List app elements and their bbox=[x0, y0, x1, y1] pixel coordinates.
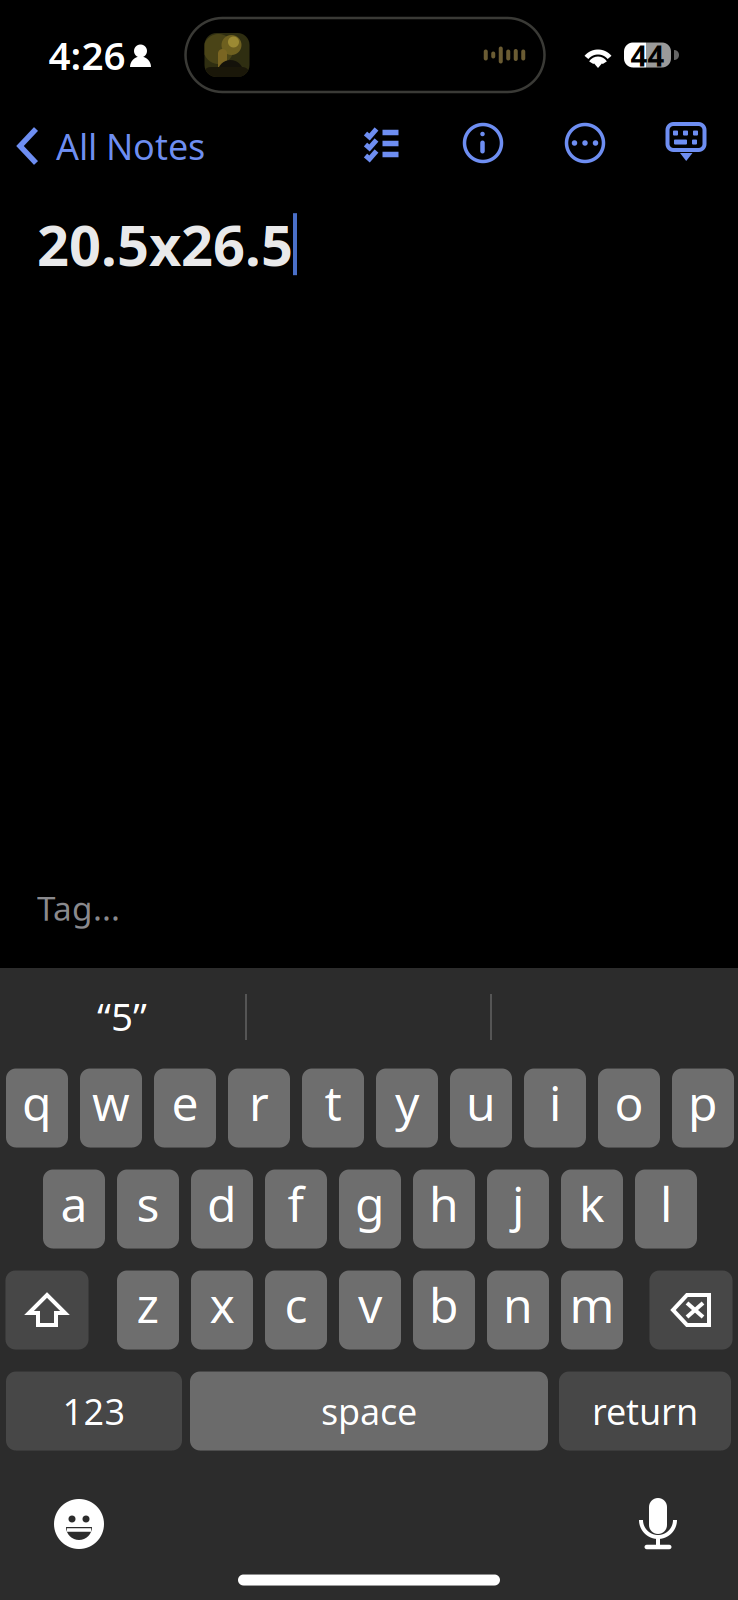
button[interactable]: Note Info bbox=[449, 109, 517, 177]
staticText: q bbox=[22, 1071, 52, 1134]
button[interactable]: All Notes bbox=[0, 105, 205, 187]
button[interactable]: h bbox=[413, 1169, 475, 1248]
button[interactable]: z bbox=[117, 1270, 179, 1349]
staticText: u bbox=[466, 1071, 496, 1134]
button[interactable]: Shift bbox=[5, 1270, 88, 1349]
button[interactable]: Delete bbox=[649, 1270, 732, 1349]
staticText: g bbox=[355, 1172, 385, 1235]
button[interactable]: g bbox=[339, 1169, 401, 1248]
button[interactable]: v bbox=[339, 1270, 401, 1349]
button[interactable]: f bbox=[265, 1169, 327, 1248]
button[interactable]: c bbox=[265, 1270, 327, 1349]
staticText: “5” bbox=[97, 990, 147, 1042]
staticText: s bbox=[136, 1172, 159, 1235]
staticText: e bbox=[171, 1071, 198, 1134]
staticText: p bbox=[688, 1071, 718, 1134]
staticText: n bbox=[503, 1273, 533, 1336]
button[interactable]: n bbox=[487, 1270, 549, 1349]
staticText: c bbox=[284, 1273, 307, 1336]
staticText: a bbox=[60, 1172, 87, 1235]
button[interactable]: a bbox=[43, 1169, 105, 1248]
button[interactable]: q bbox=[6, 1068, 68, 1147]
staticText: d bbox=[207, 1172, 237, 1235]
staticText: 123 bbox=[62, 1387, 125, 1435]
button[interactable]: d bbox=[191, 1169, 253, 1248]
button[interactable]: w bbox=[80, 1068, 142, 1147]
button[interactable]: space bbox=[190, 1371, 548, 1450]
button[interactable]: Tag... bbox=[37, 872, 240, 944]
button[interactable]: i bbox=[524, 1068, 586, 1147]
staticText: j bbox=[512, 1172, 524, 1235]
button[interactable]: b bbox=[413, 1270, 475, 1349]
staticText: i bbox=[549, 1071, 561, 1134]
staticText: r bbox=[249, 1071, 269, 1134]
button[interactable]: More bbox=[551, 109, 619, 177]
button[interactable]: r bbox=[228, 1068, 290, 1147]
button[interactable]: 123 bbox=[6, 1371, 182, 1450]
button[interactable]: m bbox=[561, 1270, 623, 1349]
button[interactable]: u bbox=[450, 1068, 512, 1147]
button[interactable]: e bbox=[154, 1068, 216, 1147]
staticText: 4:26 bbox=[48, 29, 125, 81]
staticText: b bbox=[429, 1273, 459, 1336]
staticText: 44 bbox=[630, 35, 664, 74]
button[interactable]: x bbox=[191, 1270, 253, 1349]
button[interactable]: y bbox=[376, 1068, 438, 1147]
staticText: 20.5x26.5 bbox=[37, 207, 293, 281]
staticText: h bbox=[429, 1172, 459, 1235]
staticText: z bbox=[136, 1273, 159, 1336]
button[interactable]: k bbox=[561, 1169, 623, 1248]
staticText: k bbox=[579, 1172, 605, 1235]
button[interactable]: “5” bbox=[22, 986, 222, 1046]
staticText: m bbox=[569, 1273, 614, 1336]
staticText: return bbox=[592, 1387, 698, 1435]
staticText: t bbox=[324, 1071, 341, 1134]
staticText: w bbox=[92, 1071, 130, 1134]
staticText: x bbox=[209, 1273, 234, 1336]
button[interactable]: t bbox=[302, 1068, 364, 1147]
button[interactable]: Dictation bbox=[618, 1484, 698, 1564]
staticText: v bbox=[358, 1273, 382, 1336]
staticText: space bbox=[321, 1387, 417, 1435]
staticText: o bbox=[614, 1071, 643, 1134]
staticText: y bbox=[395, 1071, 419, 1134]
button[interactable]: p bbox=[672, 1068, 734, 1147]
button[interactable]: o bbox=[598, 1068, 660, 1147]
button[interactable]: Hide Keyboard bbox=[652, 109, 720, 177]
staticText: f bbox=[287, 1172, 304, 1235]
button[interactable]: j bbox=[487, 1169, 549, 1248]
staticText: All Notes bbox=[56, 122, 205, 170]
button[interactable]: return bbox=[559, 1371, 731, 1450]
button[interactable]: Emoji bbox=[39, 1484, 119, 1564]
button[interactable]: l bbox=[635, 1169, 697, 1248]
button[interactable]: s bbox=[117, 1169, 179, 1248]
staticText: l bbox=[660, 1172, 672, 1235]
button[interactable]: Checklist bbox=[348, 109, 416, 177]
staticText: Tag... bbox=[37, 886, 120, 930]
